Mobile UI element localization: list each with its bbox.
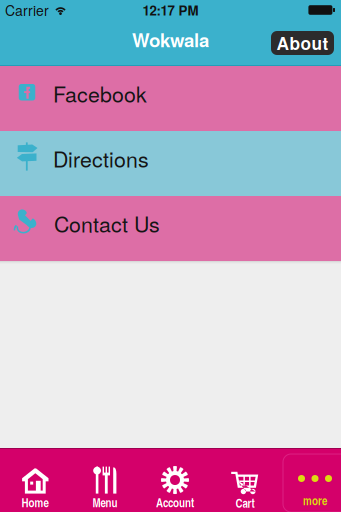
staticText: more	[303, 492, 327, 509]
staticText: Carrier	[5, 0, 49, 20]
button[interactable]: Account	[140, 448, 210, 512]
staticText: About	[276, 31, 328, 55]
staticText: 12:17 PM	[142, 0, 198, 20]
button[interactable]: Directions	[0, 131, 341, 196]
staticText: Contact Us	[54, 208, 160, 238]
button[interactable]: Cart	[210, 448, 280, 512]
button[interactable]: more	[280, 448, 341, 512]
staticText: Facebook	[53, 78, 147, 108]
staticText: Home	[21, 494, 48, 511]
button[interactable]: Home	[0, 448, 70, 512]
staticText: Menu	[92, 494, 117, 511]
button[interactable]: Facebook	[0, 66, 341, 131]
staticText: Account	[156, 494, 194, 511]
button[interactable]: Menu	[70, 448, 140, 512]
staticText: Wokwala	[132, 26, 209, 53]
button[interactable]: Contact Us	[0, 196, 341, 261]
button[interactable]: About	[271, 31, 334, 55]
staticText: Cart	[235, 494, 254, 511]
staticText: Directions	[53, 143, 149, 173]
